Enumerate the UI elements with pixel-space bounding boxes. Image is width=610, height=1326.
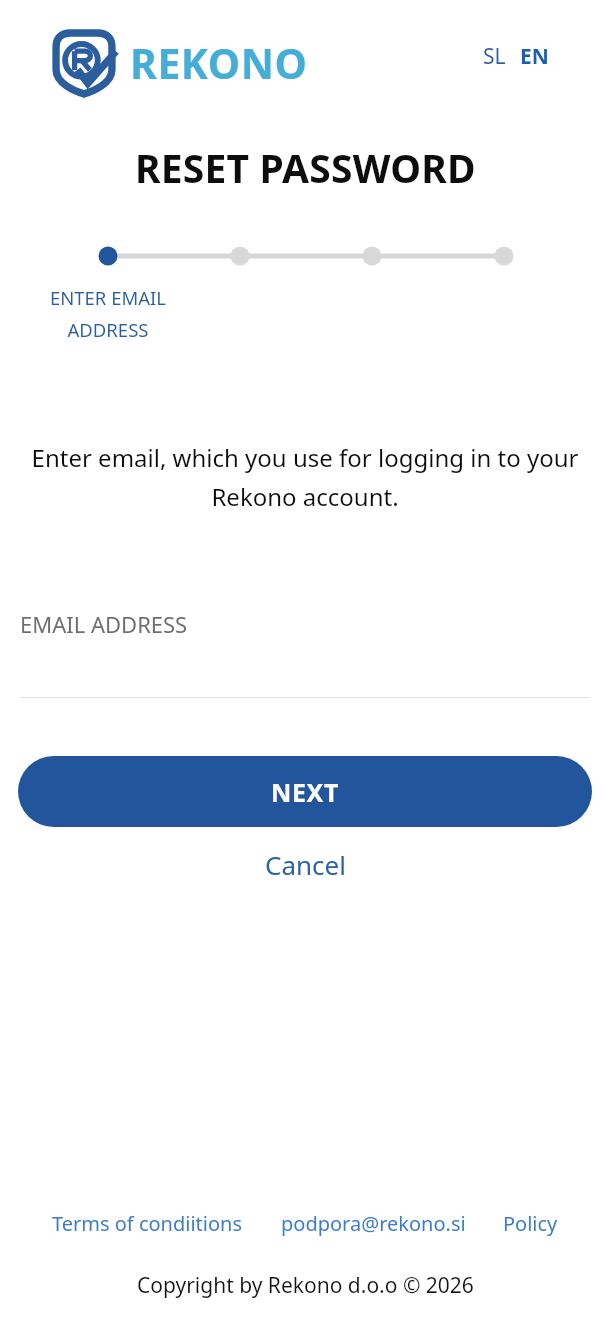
staticText: Policy (503, 1210, 558, 1237)
staticText: SL (483, 42, 506, 71)
staticText: podpora@rekono.si (281, 1210, 466, 1237)
staticText: Cancel (265, 847, 346, 882)
button[interactable]: EN (517, 38, 552, 75)
other: Rekono logo (52, 29, 116, 97)
button[interactable]: podpora@rekono.si (281, 1204, 466, 1243)
staticText: ENTER EMAIL ADDRESS (38, 285, 178, 343)
button[interactable]: Terms of condiitions (52, 1204, 243, 1243)
staticText: RESET PASSWORD (135, 141, 476, 194)
button[interactable]: Cancel (247, 841, 364, 888)
button[interactable]: NEXT (18, 756, 592, 827)
staticText: Copyright by Rekono d.o.o © 2026 (137, 1271, 474, 1300)
staticText: EN (520, 42, 549, 71)
staticText: Terms of condiitions (52, 1210, 243, 1237)
staticText: Enter email, which you use for logging i… (20, 441, 590, 513)
staticText: EMAIL ADDRESS (20, 609, 188, 639)
button[interactable]: EMAIL ADDRESS (20, 609, 590, 698)
staticText: REKONO (130, 35, 308, 91)
button[interactable]: SL (480, 38, 509, 75)
staticText: NEXT (271, 775, 339, 809)
button[interactable]: Policy (503, 1204, 558, 1243)
